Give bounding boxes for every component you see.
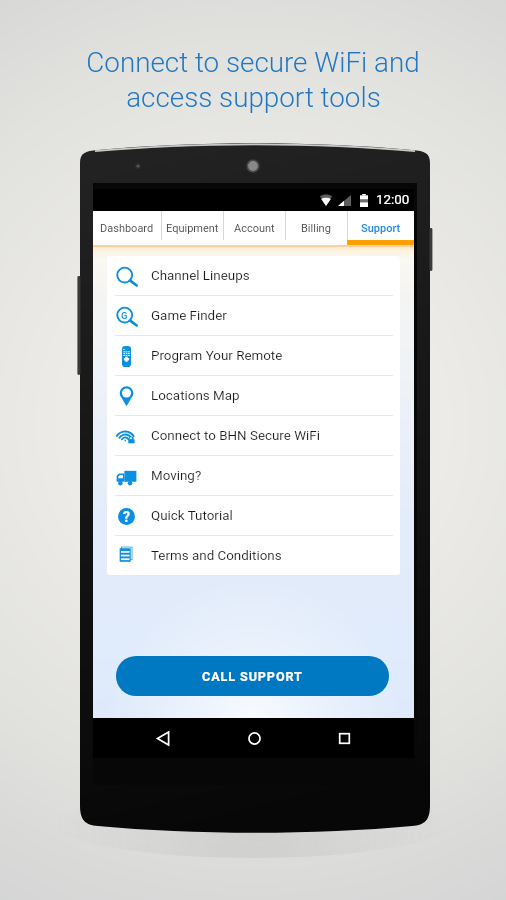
staticText: Billing bbox=[301, 222, 331, 235]
button[interactable]: Moving? bbox=[107, 456, 400, 496]
staticText: Moving? bbox=[151, 468, 202, 484]
button[interactable]: G bbox=[107, 296, 400, 336]
button[interactable]: Program Your Remote bbox=[107, 336, 400, 376]
button[interactable]: ? bbox=[107, 496, 400, 536]
button[interactable]: Connect to BHN Secure WiFi bbox=[107, 416, 400, 456]
button[interactable]: Recent apps bbox=[324, 718, 364, 758]
button[interactable]: Support bbox=[347, 211, 414, 245]
staticText: Locations Map bbox=[151, 388, 240, 404]
staticText: CALL SUPPORT bbox=[202, 669, 303, 684]
staticText: Channel Lineups bbox=[151, 268, 250, 284]
staticText: access support tools bbox=[126, 81, 381, 114]
staticText: Connect to secure WiFi and bbox=[86, 46, 420, 79]
button[interactable]: Back bbox=[143, 718, 183, 758]
staticText: Equipment bbox=[166, 222, 219, 235]
staticText: Terms and Conditions bbox=[151, 548, 282, 564]
button[interactable]: Channel Lineups bbox=[107, 256, 400, 296]
button[interactable]: Dashboard bbox=[93, 211, 161, 245]
staticText: G bbox=[121, 310, 128, 321]
staticText: 12:00 bbox=[376, 192, 410, 208]
button[interactable]: Locations Map bbox=[107, 376, 400, 416]
button[interactable]: Terms and Conditions bbox=[107, 536, 400, 575]
button[interactable]: Home bbox=[234, 718, 274, 758]
button[interactable]: CALL SUPPORT bbox=[116, 656, 389, 696]
staticText: ? bbox=[123, 509, 130, 525]
staticText: Support bbox=[361, 222, 401, 235]
staticText: Connect to BHN Secure WiFi bbox=[151, 428, 321, 444]
staticText: Quick Tutorial bbox=[151, 508, 233, 524]
button[interactable]: Account bbox=[223, 211, 285, 245]
button[interactable]: Equipment bbox=[161, 211, 223, 245]
button[interactable]: Billing bbox=[285, 211, 347, 245]
staticText: Game Finder bbox=[151, 308, 227, 324]
staticText: Program Your Remote bbox=[151, 348, 283, 364]
staticText: Account bbox=[234, 222, 275, 235]
staticText: Dashboard bbox=[100, 222, 154, 235]
